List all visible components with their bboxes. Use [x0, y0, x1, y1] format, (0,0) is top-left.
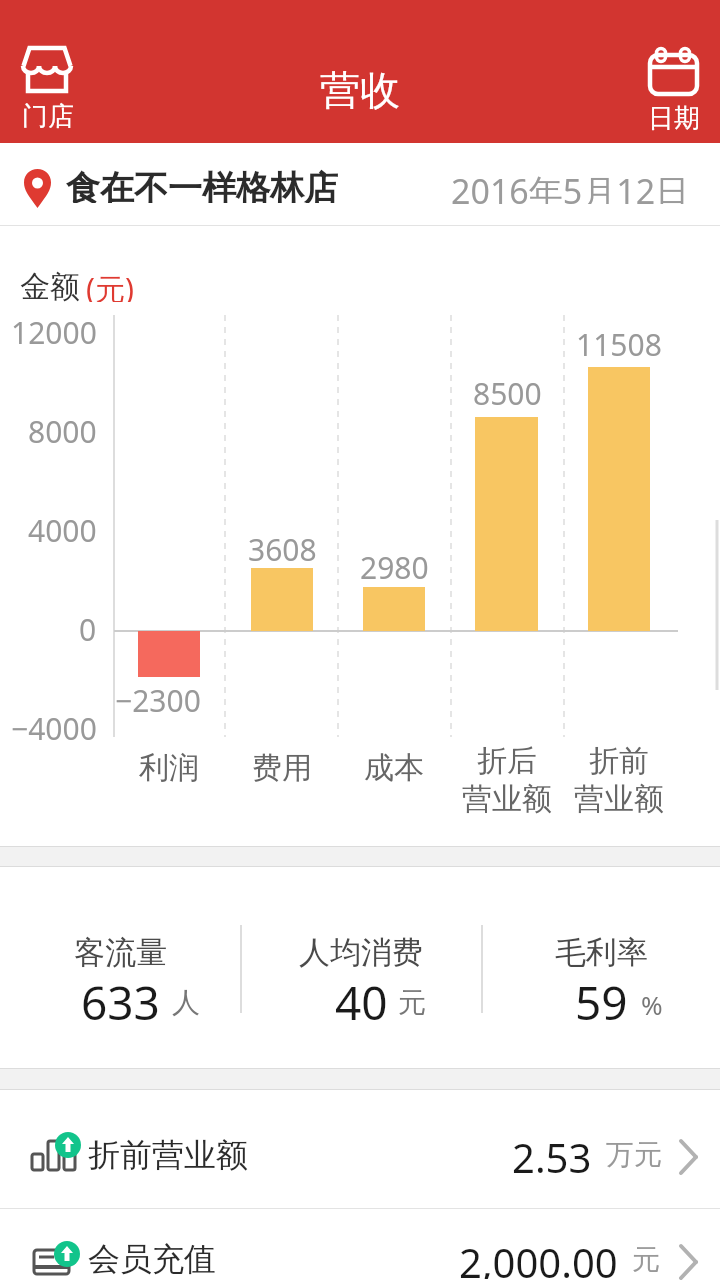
staticText: 3608: [248, 529, 317, 569]
button[interactable]: 门店: [8, 36, 88, 136]
staticText: 金额: [20, 268, 80, 302]
staticText: 成本: [364, 749, 424, 787]
button[interactable]: 日期: [632, 36, 712, 136]
staticText: 折前: [589, 742, 649, 780]
staticText: 11508: [576, 324, 662, 364]
staticText: −4000: [11, 708, 97, 748]
staticText: 毛利率: [555, 933, 648, 972]
staticText: 元: [632, 1242, 660, 1276]
staticText: 门店: [22, 100, 74, 132]
button[interactable]: 折前营业额: [0, 1090, 720, 1208]
staticText: 4000: [28, 510, 97, 550]
staticText: %: [641, 987, 663, 1021]
staticText: 2.53: [512, 1130, 592, 1174]
staticText: 利润: [139, 749, 199, 787]
staticText: 2016年5月12日: [451, 168, 690, 204]
staticText: 客流量: [74, 933, 167, 972]
staticText: 营业额: [462, 780, 552, 818]
staticText: 费用: [252, 749, 312, 787]
staticText: 折后: [477, 742, 537, 780]
staticText: 会员充值: [88, 1239, 216, 1277]
button[interactable]: 食在不一样格林店: [0, 143, 720, 225]
staticText: 0: [79, 609, 97, 649]
staticText: 12000: [11, 312, 97, 352]
staticText: 2980: [360, 547, 429, 587]
staticText: 元: [398, 985, 426, 1019]
staticText: 营收: [320, 65, 400, 115]
staticText: 人均消费: [299, 933, 423, 972]
staticText: 8500: [473, 373, 542, 413]
staticText: 59: [575, 971, 628, 1023]
staticText: 日期: [648, 102, 700, 134]
staticText: 营业额: [574, 780, 664, 818]
staticText: (元): [86, 268, 134, 302]
staticText: 万元: [606, 1137, 662, 1171]
staticText: 8000: [28, 411, 97, 451]
staticText: 2,000.00: [459, 1235, 618, 1279]
staticText: 40: [335, 971, 388, 1023]
staticText: 折前营业额: [88, 1135, 248, 1173]
staticText: 食在不一样格林店: [66, 167, 338, 203]
staticText: −2300: [115, 680, 201, 720]
staticText: 633: [81, 971, 160, 1023]
staticText: 人: [172, 985, 200, 1019]
button[interactable]: 会员充值: [0, 1209, 720, 1280]
